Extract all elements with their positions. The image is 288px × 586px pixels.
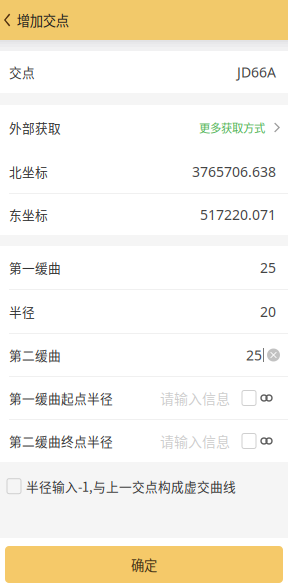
staticText: 增加交点 [17,10,69,30]
staticText: JD66A [237,62,276,82]
staticText: 请输入信息 [160,388,230,408]
button[interactable]: 半径输入-1,与上一交点构成虚交曲线 [7,471,236,501]
staticText: 第二缓曲终点半径 [9,432,113,450]
staticText: 半径 [9,302,35,321]
staticText: 25 [246,345,262,365]
button[interactable]: 半径 [0,290,288,333]
staticText: 第一缓曲 [9,258,61,277]
button[interactable]: 第二缓曲 [0,334,288,376]
staticText: 东坐标 [9,205,48,224]
button[interactable]: 第二缓曲终点半径 [0,420,288,462]
button[interactable]: 第一缓曲 [0,246,288,289]
staticText: 20 [260,302,276,321]
button[interactable]: 增加交点 [0,0,77,40]
staticText: 更多获取方式 [199,119,265,136]
staticText: 第二缓曲 [9,346,61,364]
staticText: 确定 [131,555,157,574]
staticText: 北坐标 [9,162,48,181]
staticText: 517220.071 [200,205,276,224]
button[interactable]: 确定 [5,546,283,583]
button[interactable]: 东坐标 [0,194,288,235]
staticText: 3765706.638 [192,162,276,181]
staticText: 交点 [9,63,35,81]
staticText: 请输入信息 [160,431,230,451]
staticText: 外部获取 [9,118,61,137]
button[interactable]: 第一缓曲起点半径 [0,377,288,419]
button[interactable]: 北坐标 [0,150,288,193]
staticText: 25 [260,258,276,277]
button[interactable]: 外部获取 [0,105,288,150]
button[interactable]: 交点 [0,51,288,93]
staticText: 半径输入-1,与上一交点构成虚交曲线 [26,477,236,495]
staticText: 第一缓曲起点半径 [9,389,113,407]
